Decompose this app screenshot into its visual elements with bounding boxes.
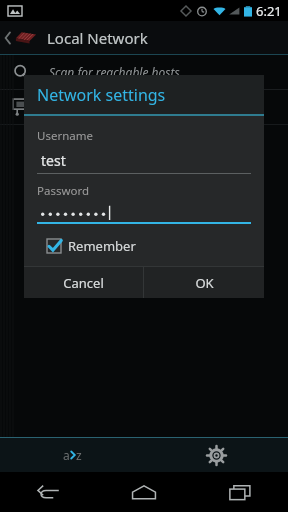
staticText: Username xyxy=(37,128,93,144)
staticText: a xyxy=(63,447,70,463)
staticText: OK xyxy=(195,274,214,292)
button[interactable]: Remember xyxy=(37,235,142,257)
staticText: z xyxy=(76,447,82,463)
button[interactable]: Settings xyxy=(144,438,288,472)
button[interactable]: 192.168.0.1 xyxy=(0,90,288,124)
button[interactable]: test xyxy=(37,151,251,174)
staticText: Network settings xyxy=(37,84,166,106)
staticText: Scan for reachable hosts xyxy=(49,64,180,80)
button[interactable]: Cancel xyxy=(24,267,143,298)
button[interactable]: Navigate up xyxy=(0,21,39,54)
staticText: Remember xyxy=(68,237,136,255)
button[interactable]: OK xyxy=(144,267,264,298)
staticText: Cancel xyxy=(63,274,104,292)
staticText: test xyxy=(41,151,66,170)
button[interactable]: Back xyxy=(0,472,96,512)
button[interactable]: Scan for reachable hosts xyxy=(0,55,288,89)
staticText: Password xyxy=(37,183,90,199)
staticText: 6:21 xyxy=(256,2,282,20)
staticText: Local Network xyxy=(47,28,148,48)
button[interactable]: Recent apps xyxy=(192,472,288,512)
button[interactable]: Home xyxy=(96,472,192,512)
button[interactable]: Sort alphabetically xyxy=(0,438,144,472)
staticText: 192.168.0.1 xyxy=(46,99,114,116)
button[interactable] xyxy=(37,205,251,224)
